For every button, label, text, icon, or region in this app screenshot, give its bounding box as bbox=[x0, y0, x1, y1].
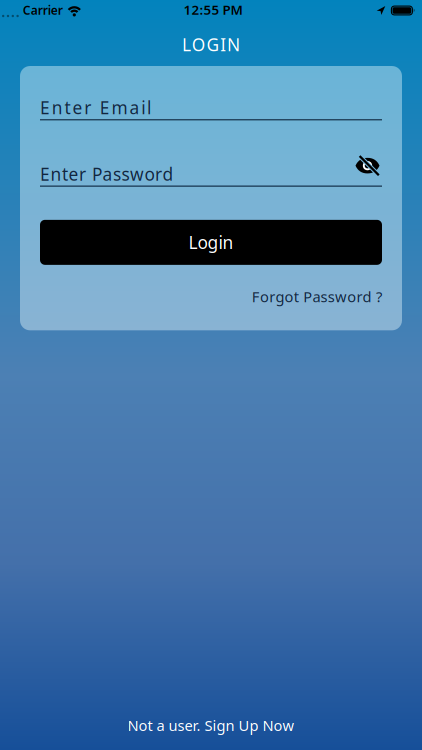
staticText: LOGIN bbox=[182, 33, 240, 56]
button[interactable]: Forgot Password ? bbox=[252, 287, 382, 306]
staticText: Enter Password bbox=[40, 162, 173, 185]
staticText: Carrier bbox=[23, 2, 63, 18]
staticText: Forgot Password ? bbox=[252, 287, 382, 306]
staticText: Login bbox=[188, 231, 233, 254]
staticText: 12:55 PM bbox=[183, 1, 242, 18]
button[interactable]: Show password bbox=[355, 155, 380, 177]
button[interactable]: Not a user. Sign Up Now bbox=[127, 715, 294, 735]
staticText: Not a user. Sign Up Now bbox=[127, 715, 294, 735]
staticText: Enter Email bbox=[40, 96, 151, 119]
button[interactable]: Login bbox=[40, 220, 382, 265]
